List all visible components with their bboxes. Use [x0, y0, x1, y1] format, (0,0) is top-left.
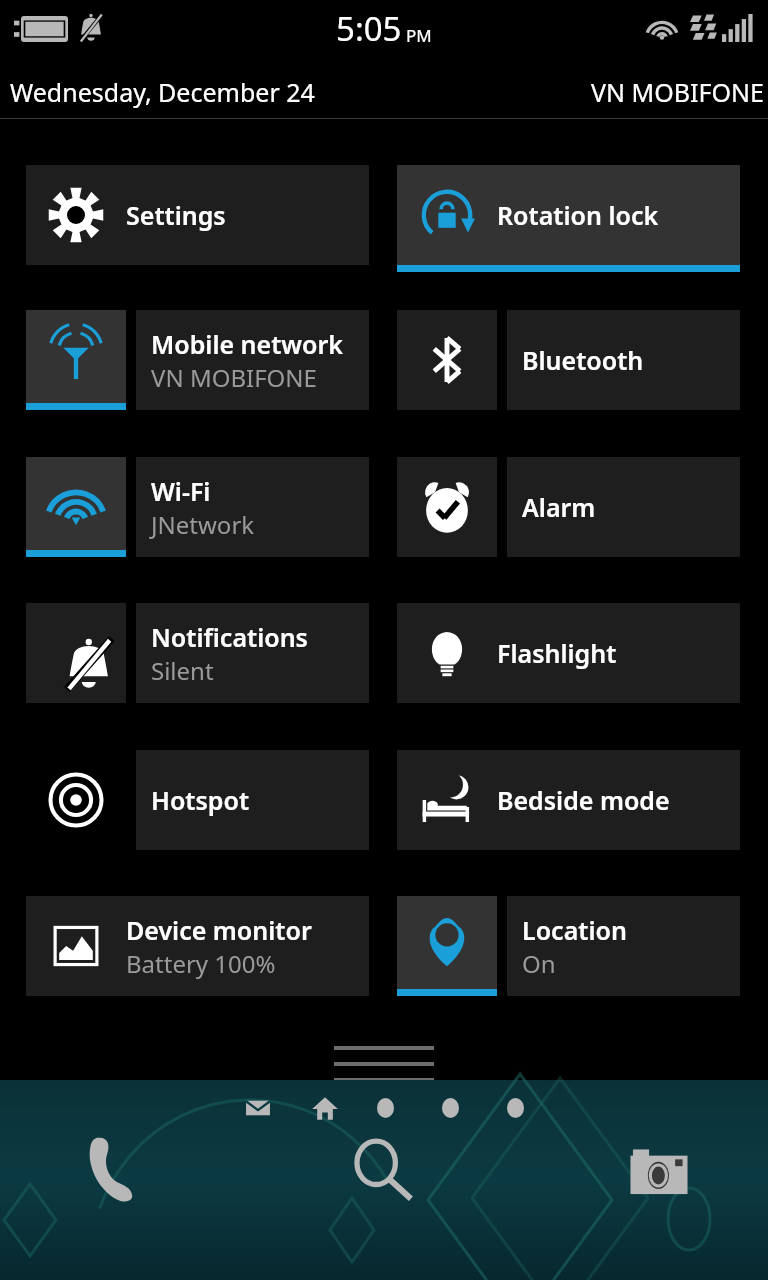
staticText: Silent	[151, 654, 214, 687]
button[interactable]: Bluetooth	[397, 310, 740, 410]
staticText: Alarm	[522, 490, 596, 524]
button[interactable]: Messages	[245, 1095, 271, 1121]
button[interactable]: Search	[352, 1138, 414, 1200]
staticText: Wednesday, December 24	[10, 75, 315, 109]
staticText: Battery 100%	[126, 947, 276, 980]
button[interactable]: Hotspot	[26, 750, 369, 850]
staticText: Flashlight	[497, 636, 617, 670]
button[interactable]: Location	[397, 896, 740, 996]
staticText: Settings	[126, 198, 226, 232]
button[interactable]: Settings	[26, 165, 369, 265]
staticText: JNetwork	[151, 508, 255, 541]
staticText: Wi-Fi	[151, 474, 211, 508]
staticText: 5:05	[336, 6, 402, 51]
button[interactable]: Notifications	[26, 603, 369, 703]
staticText: PM	[406, 24, 432, 47]
staticText: Device monitor	[126, 913, 312, 947]
staticText: Bedside mode	[497, 783, 670, 817]
button[interactable]: Mobile network	[26, 310, 369, 410]
button[interactable]	[377, 1098, 394, 1118]
button[interactable]	[507, 1098, 524, 1118]
staticText: Rotation lock	[497, 198, 659, 232]
button[interactable]: Home	[311, 1094, 339, 1122]
staticText: VN MOBIFONE	[151, 361, 317, 394]
button[interactable]: Flashlight	[397, 603, 740, 703]
staticText: Bluetooth	[522, 343, 644, 377]
button[interactable]: Phone	[80, 1136, 144, 1200]
staticText: On	[522, 947, 556, 980]
staticText: VN MOBIFONE	[591, 75, 764, 109]
button[interactable]: Rotation lock	[397, 165, 740, 272]
button[interactable]	[442, 1098, 459, 1118]
button[interactable]: Camera	[628, 1142, 690, 1204]
button[interactable]: Device monitor	[26, 896, 369, 996]
button[interactable]: Wi-Fi	[26, 457, 369, 557]
staticText: Mobile network	[151, 327, 344, 361]
button[interactable]: Alarm	[397, 457, 740, 557]
staticText: Notifications	[151, 620, 308, 654]
staticText: Hotspot	[151, 783, 250, 817]
staticText: Location	[522, 913, 627, 947]
button[interactable]: Bedside mode	[397, 750, 740, 850]
